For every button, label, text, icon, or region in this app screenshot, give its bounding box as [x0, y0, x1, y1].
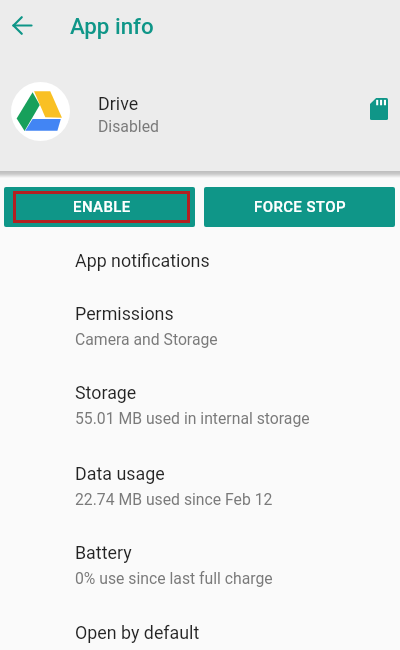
staticText: Open by default [75, 622, 200, 643]
button[interactable]: Back [12, 13, 37, 38]
staticText: Disabled [98, 117, 159, 136]
button[interactable]: Storage location [362, 92, 396, 126]
staticText: Battery [75, 542, 132, 563]
staticText: Storage [75, 382, 137, 403]
staticText: App notifications [75, 250, 210, 271]
staticText: 22.74 MB used since Feb 12 [75, 490, 273, 508]
staticText: 55.01 MB used in internal storage [75, 409, 310, 427]
staticText: FORCE STOP [254, 198, 346, 216]
button[interactable]: Permissions [0, 293, 400, 359]
staticText: Data usage [75, 463, 165, 484]
staticText: ENABLE [73, 198, 131, 216]
button[interactable]: ENABLE [4, 187, 195, 227]
staticText: Permissions [75, 303, 174, 324]
staticText: App info [70, 13, 154, 39]
button[interactable]: App notifications [0, 240, 400, 286]
staticText: Drive [98, 93, 139, 114]
button[interactable]: Open by default [0, 612, 400, 650]
button[interactable]: Data usage [0, 453, 400, 519]
button[interactable]: FORCE STOP [204, 187, 395, 227]
button[interactable]: Battery [0, 532, 400, 598]
button[interactable]: Storage [0, 372, 400, 438]
staticText: 0% use since last full charge [75, 569, 273, 587]
staticText: Camera and Storage [75, 330, 218, 348]
